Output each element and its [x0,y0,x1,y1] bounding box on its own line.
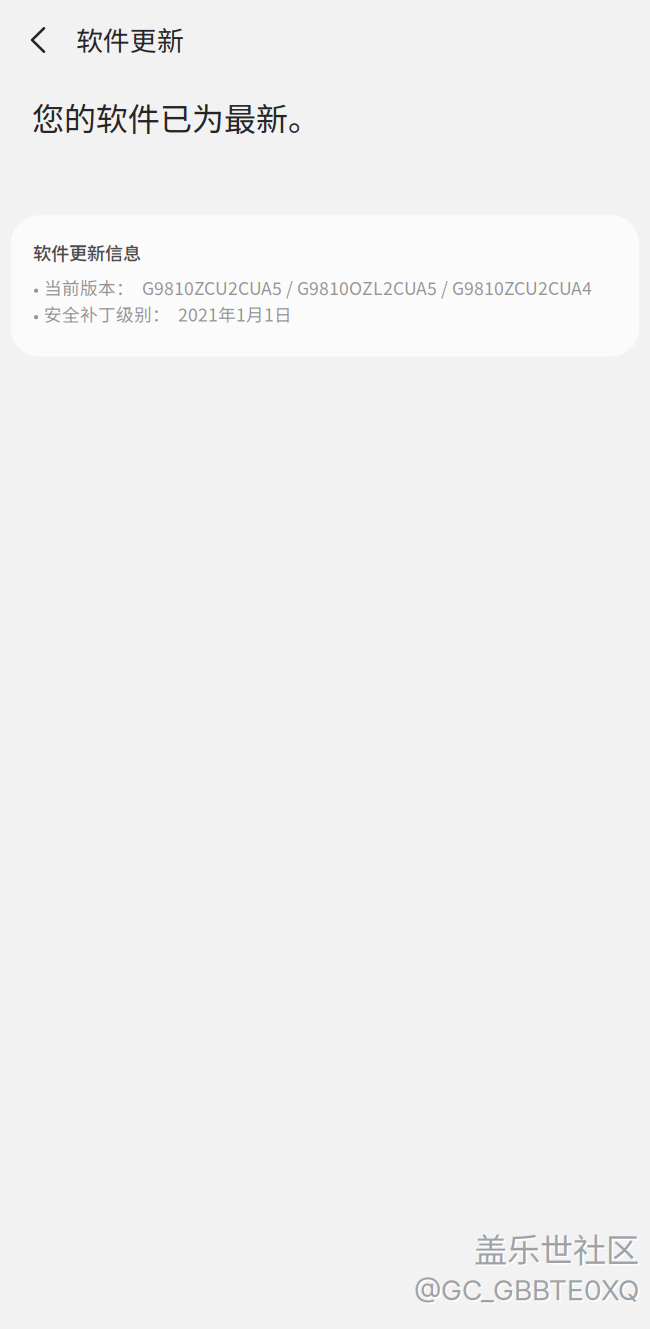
staticText: 软件更新 [76,20,184,58]
staticText: 安全补丁级别： 2021年1月1日 [44,301,292,327]
staticText: 盖乐世社区 [476,1225,641,1274]
staticText: 您的软件已为最新。 [32,94,320,140]
staticText: 当前版本： G9810ZCU2CUA5 / G9810OZL2CUA5 / G9… [44,275,592,300]
staticText: 软件更新信息 [33,239,141,266]
button[interactable]: Back [15,11,61,69]
staticText: @GC_GBBTE0XQ [414,1273,639,1307]
staticText: 盖乐世社区 [474,1224,639,1272]
staticText: @GC_GBBTE0XQ [416,1275,641,1309]
